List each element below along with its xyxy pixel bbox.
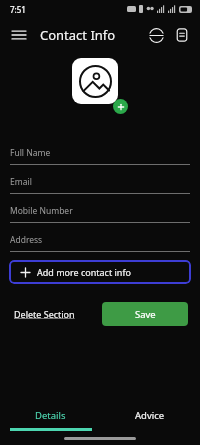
staticText: Advice xyxy=(135,409,165,422)
staticText: Details xyxy=(35,409,66,422)
button[interactable]: Menu xyxy=(4,20,34,50)
staticText: Add more contact info xyxy=(37,266,131,278)
staticText: Save xyxy=(135,308,156,321)
button[interactable]: Details xyxy=(0,402,100,428)
button[interactable]: Add more contact info xyxy=(9,260,191,284)
staticText: 7:51 xyxy=(10,4,26,15)
staticText: Full Name xyxy=(10,147,51,159)
button[interactable]: Email xyxy=(10,165,190,194)
staticText: Contact Info xyxy=(40,26,116,44)
button[interactable]: Add photo xyxy=(113,99,128,114)
button[interactable]: Advice xyxy=(100,402,200,428)
button[interactable]: Delete Section xyxy=(12,302,77,326)
staticText: Address xyxy=(10,234,43,246)
button[interactable]: Mobile Number xyxy=(10,194,190,223)
button[interactable]: Document xyxy=(169,22,195,48)
button[interactable]: Address xyxy=(10,223,190,252)
button[interactable]: Scan xyxy=(143,22,169,48)
button[interactable]: Full Name xyxy=(10,136,190,165)
staticText: Email xyxy=(10,176,32,188)
button[interactable]: Save xyxy=(102,302,188,326)
button[interactable]: Profile photo xyxy=(72,58,118,104)
staticText: Delete Section xyxy=(14,308,75,320)
staticText: Mobile Number xyxy=(10,205,73,217)
